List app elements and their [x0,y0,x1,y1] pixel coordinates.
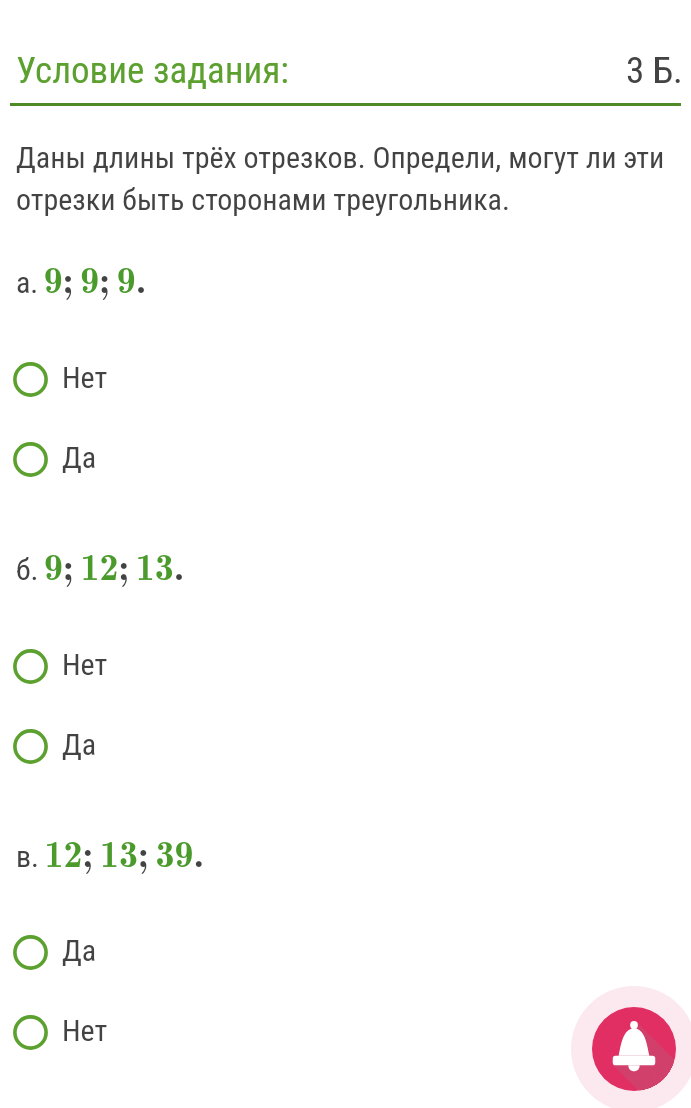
staticText: Да [62,727,97,762]
button[interactable]: Да [0,923,240,981]
button[interactable]: Нет [0,1003,240,1061]
button[interactable]: Да [0,430,240,488]
staticText: 3 Б. [626,49,683,92]
staticText: в. 12; 13; 39. [16,824,204,878]
button[interactable]: Да [0,717,240,775]
staticText: Да [62,933,97,968]
button[interactable]: Notifications [571,986,691,1108]
staticText: Да [62,440,97,475]
button[interactable]: Нет [0,637,240,695]
staticText: Даны длины трёх отрезков. Определи, могу… [16,140,686,218]
staticText: Нет [62,647,108,682]
button[interactable]: Нет [0,350,240,408]
staticText: б. 9; 12; 13. [16,537,185,591]
staticText: Нет [62,360,108,395]
staticText: а. 9; 9; 9. [16,250,147,304]
staticText: Нет [62,1013,108,1048]
staticText: Условие задания: [16,49,289,92]
